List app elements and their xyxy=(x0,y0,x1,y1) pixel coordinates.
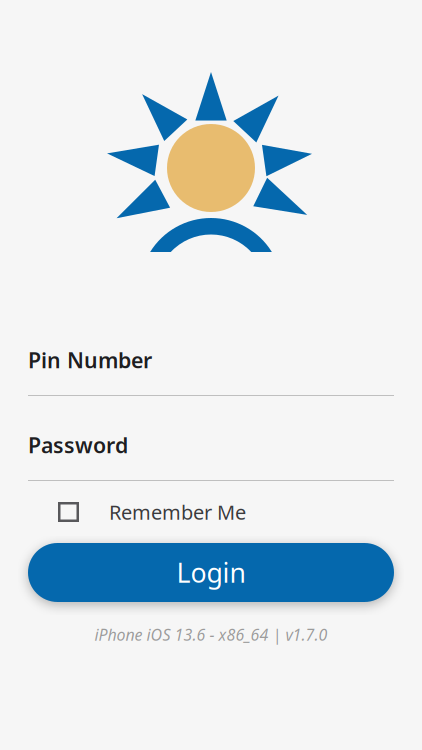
staticText: Password xyxy=(28,431,128,459)
staticText: iPhone iOS 13.6 - x86_64 | v1.7.0 xyxy=(94,624,327,645)
button[interactable]: Login xyxy=(28,543,394,602)
staticText: Remember Me xyxy=(109,499,246,525)
staticText: Login xyxy=(176,555,245,590)
staticText: Pin Number xyxy=(28,346,152,374)
button[interactable]: Remember Me xyxy=(28,497,394,527)
